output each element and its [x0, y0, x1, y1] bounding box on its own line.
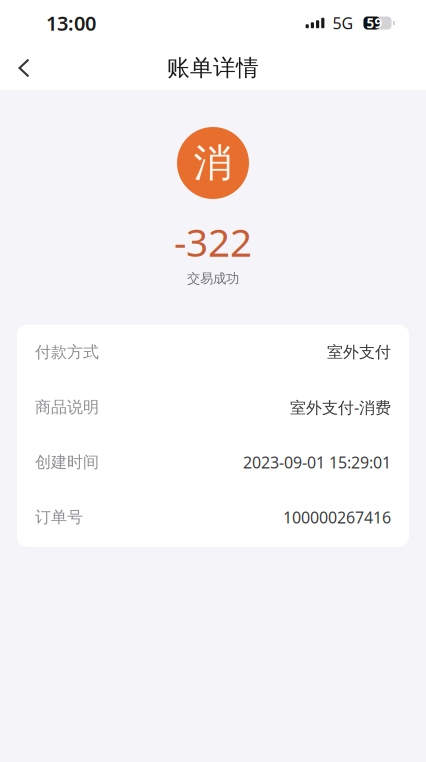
staticText: 商品说明	[35, 397, 99, 417]
staticText: 59	[366, 14, 382, 32]
staticText: 2023-09-01 15:29:01	[243, 452, 391, 473]
staticText: 付款方式	[35, 342, 99, 362]
staticText: 消	[193, 139, 232, 187]
staticText: 创建时间	[35, 452, 99, 472]
staticText: 室外支付	[327, 342, 391, 362]
staticText: 室外支付-消费	[290, 397, 391, 418]
staticText: 账单详情	[167, 54, 259, 82]
staticText: 100000267416	[283, 507, 391, 528]
staticText: 5G	[332, 12, 353, 34]
staticText: 交易成功	[187, 270, 239, 287]
button[interactable]: Back	[4, 46, 44, 90]
staticText: 13:00	[46, 10, 96, 36]
staticText: 订单号	[35, 507, 83, 527]
staticText: -322	[174, 216, 252, 267]
